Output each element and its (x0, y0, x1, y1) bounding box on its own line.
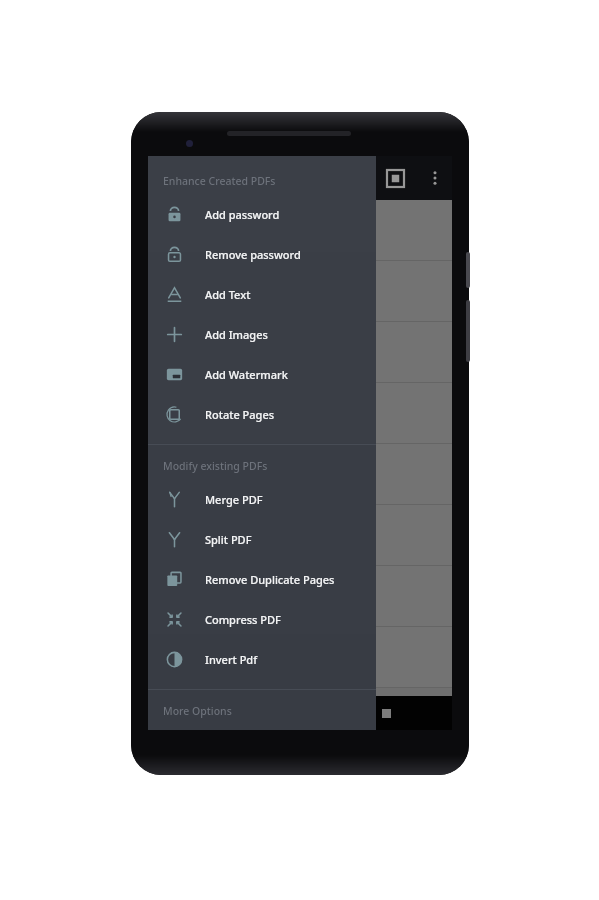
button[interactable]: Rotate Pages (148, 394, 376, 434)
staticText: Apr 18 at 09:2 (164, 662, 226, 675)
staticText: Document.PDF (164, 576, 242, 591)
staticText: Document.PDF (164, 332, 242, 347)
staticText: May 01 at 18:0 (164, 540, 229, 553)
staticText: Split PDF (205, 532, 252, 547)
button[interactable]: Document.PDF (148, 200, 452, 260)
staticText: Add Text (205, 287, 251, 302)
staticText: Remove Duplicate Pages (205, 572, 335, 587)
button[interactable]: Document.PDF (148, 444, 452, 504)
staticText: Merge PDF (205, 492, 263, 507)
button[interactable]: Merge PDF (148, 479, 376, 519)
button[interactable]: Invert Pdf (148, 639, 376, 679)
staticText: Document.PDF (164, 454, 242, 469)
staticText: Jun 23 at 17:3 (164, 296, 225, 309)
staticText: Add Watermark (205, 367, 288, 382)
button[interactable]: Add Images (148, 314, 376, 354)
button[interactable]: Compress PDF (148, 599, 376, 639)
staticText: Rotate Pages (205, 407, 275, 422)
button[interactable]: Document.PDF (148, 261, 452, 321)
staticText: May 01 at 18:0 (164, 601, 229, 614)
button[interactable]: Add Text (148, 274, 376, 314)
staticText: More Options (163, 704, 232, 718)
button[interactable]: Remove Duplicate Pages (148, 559, 376, 599)
button[interactable]: Document.PDF (148, 322, 452, 382)
button[interactable]: Add Watermark (148, 354, 376, 394)
button[interactable]: Split PDF (148, 519, 376, 559)
staticText: Add Images (205, 327, 268, 342)
button[interactable]: Document.PDF (148, 627, 452, 687)
staticText: Modify existing PDFs (163, 459, 268, 473)
staticText: May 01 at 18:0 (164, 235, 229, 248)
staticText: Compress PDF (205, 612, 281, 627)
button[interactable]: Back (194, 696, 234, 730)
staticText: Document.PDF (164, 210, 242, 225)
staticText: Invert Pdf (205, 652, 258, 667)
button[interactable]: Document.PDF (148, 505, 452, 565)
button[interactable]: Remove password (148, 234, 376, 274)
staticText: Enhance Created PDFs (163, 174, 276, 188)
staticText: May 01 at 18:0 (164, 418, 229, 431)
staticText: Add password (205, 207, 280, 222)
button[interactable]: Document.PDF (148, 566, 452, 626)
button[interactable]: More options (421, 164, 449, 192)
staticText: Document.PDF (164, 393, 242, 408)
button[interactable]: Add password (148, 194, 376, 234)
button[interactable]: Recent apps (366, 696, 406, 730)
staticText: May 01 at 18:05 (164, 357, 235, 370)
button[interactable]: Select all (380, 163, 410, 193)
staticText: Remove password (205, 247, 301, 262)
button[interactable]: Document.PDF (148, 383, 452, 443)
